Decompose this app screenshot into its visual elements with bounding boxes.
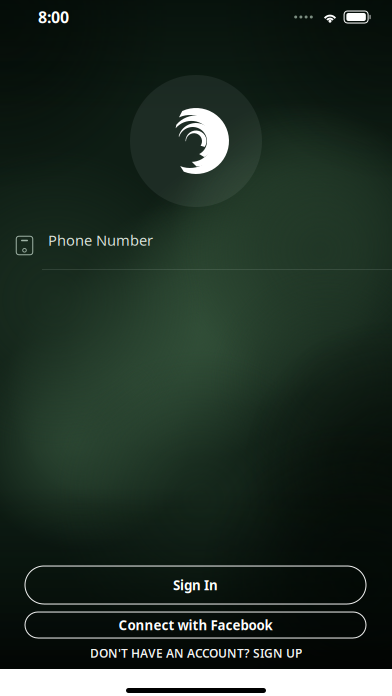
- staticText: Phone Number: [48, 230, 153, 250]
- staticText: Sign In: [173, 576, 218, 594]
- button[interactable]: DON'T HAVE AN ACCOUNT? SIGN UP: [46, 645, 346, 661]
- staticText: 8:00: [38, 6, 69, 28]
- staticText: DON'T HAVE AN ACCOUNT? SIGN UP: [90, 645, 302, 661]
- staticText: Connect with Facebook: [118, 616, 272, 634]
- button[interactable]: Sign In: [25, 566, 366, 604]
- button[interactable]: Connect with Facebook: [25, 612, 366, 638]
